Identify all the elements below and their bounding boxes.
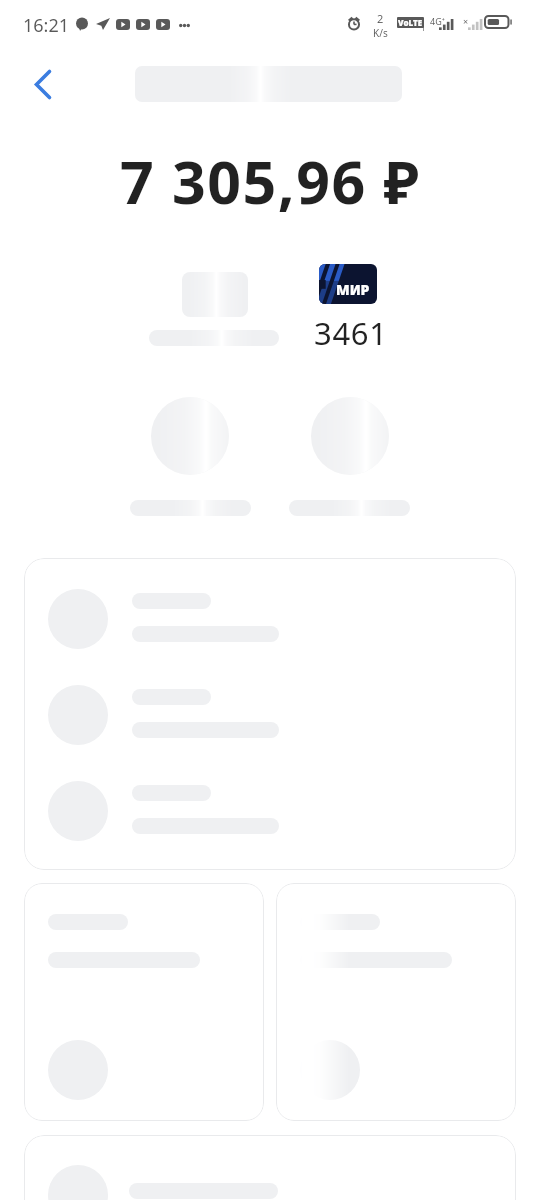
staticText: 7 305,96 ₽ [120,141,421,221]
button[interactable] [24,558,516,870]
staticText: 1 [421,22,426,33]
staticText: 2 [377,11,384,26]
staticText: 3461 [314,312,388,354]
button[interactable] [276,883,516,1121]
staticText: K/s [373,26,388,40]
staticText: 16:21 [23,13,70,38]
staticText: VoLTE [398,17,423,28]
staticText: МИР [336,280,370,299]
button[interactable] [24,1135,516,1200]
staticText: 4G⁺ [430,15,445,27]
button[interactable] [24,883,264,1121]
button[interactable]: MIR card [319,264,377,304]
staticText: × [463,15,469,27]
button[interactable]: Back [22,63,64,105]
